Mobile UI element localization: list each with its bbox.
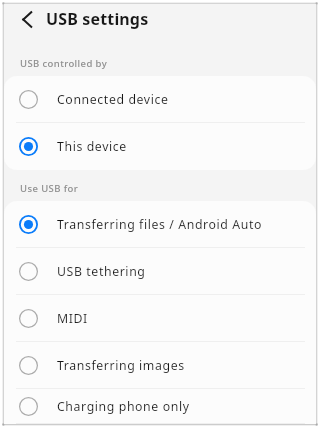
button[interactable]: Connected device <box>4 76 316 123</box>
staticText: MIDI <box>57 310 88 327</box>
staticText: Transferring files / Android Auto <box>57 216 263 233</box>
button[interactable]: MIDI <box>4 295 316 342</box>
staticText: Transferring images <box>57 357 185 374</box>
button[interactable]: Transferring files / Android Auto <box>4 201 316 248</box>
staticText: USB settings <box>46 8 149 30</box>
button[interactable]: Charging phone only <box>4 389 316 424</box>
button[interactable]: Transferring images <box>4 342 316 389</box>
staticText: This device <box>57 138 127 155</box>
staticText: USB controlled by <box>20 57 108 70</box>
staticText: Charging phone only <box>57 398 190 415</box>
staticText: Use USB for <box>20 182 79 195</box>
staticText: USB tethering <box>57 263 146 280</box>
staticText: Connected device <box>57 91 169 108</box>
button[interactable]: Back <box>12 4 42 34</box>
button[interactable]: This device <box>4 123 316 170</box>
button[interactable]: USB tethering <box>4 248 316 295</box>
